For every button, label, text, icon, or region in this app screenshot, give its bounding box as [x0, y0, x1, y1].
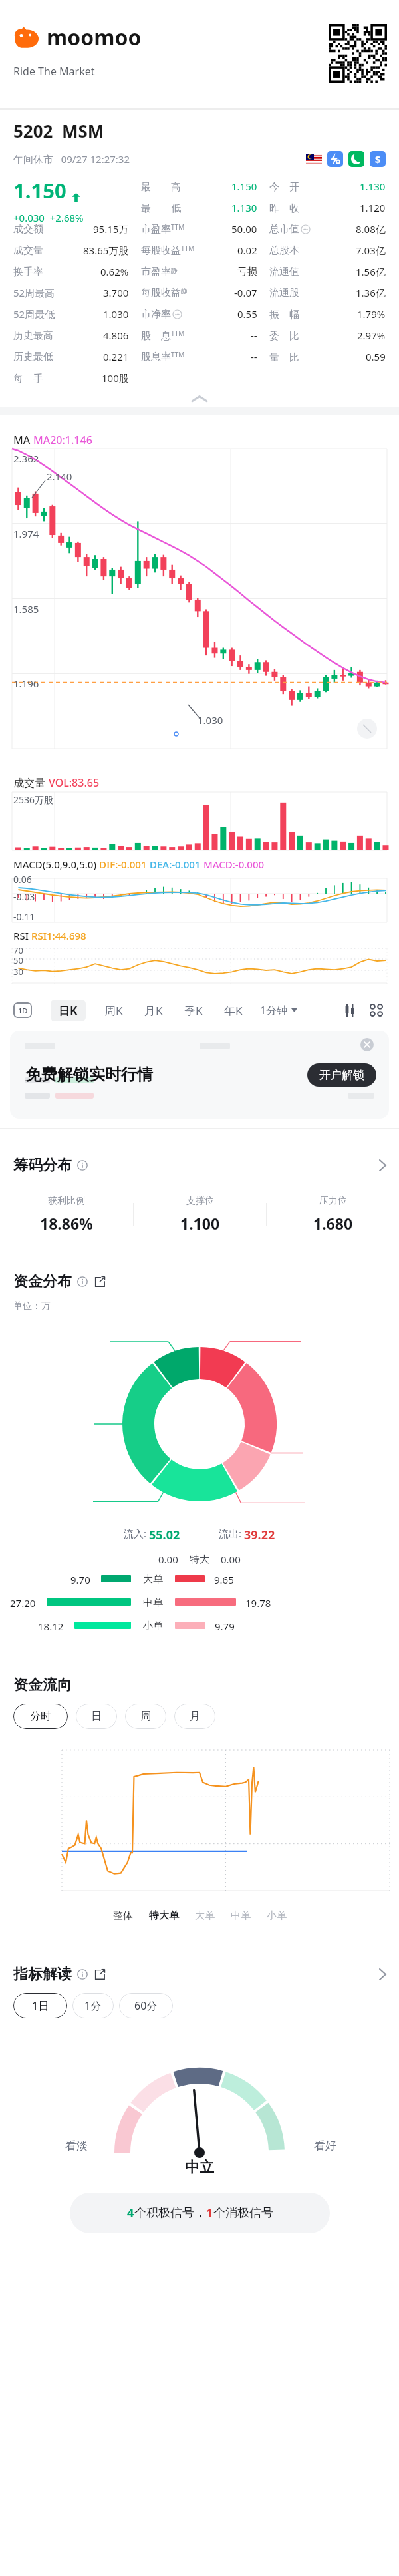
button[interactable]: 周K — [96, 1000, 131, 1021]
staticText: 3.700 — [103, 286, 129, 299]
button[interactable]: 年K — [216, 1000, 251, 1021]
staticText: 1.36亿 — [356, 286, 386, 299]
staticText: 看淡 — [65, 2139, 88, 2153]
staticText: 中单 — [231, 1909, 251, 1922]
button[interactable]: 1分 — [72, 1993, 114, 2018]
button[interactable]: 小单 — [259, 1907, 295, 1925]
staticText: 1.585 — [13, 602, 39, 616]
staticText: 静 — [181, 287, 188, 295]
staticText: 特大 — [190, 1553, 209, 1566]
staticText: 流通股 — [269, 287, 299, 299]
staticText: 2.97% — [357, 329, 386, 342]
staticText: 整体 — [113, 1909, 133, 1922]
staticText: 开户解锁 — [319, 1068, 364, 1082]
button[interactable]: 中单 — [223, 1907, 259, 1925]
staticText: 1.150 — [231, 180, 257, 193]
button[interactable]: 整体 — [105, 1907, 141, 1925]
button[interactable]: 1日 — [13, 1993, 67, 2018]
staticText: 4 — [127, 2205, 134, 2221]
button[interactable]: 季K — [176, 1000, 211, 1021]
staticText: 95.15万 — [93, 222, 129, 236]
staticText: 52周最低 — [13, 307, 55, 321]
staticText: MA — [13, 433, 33, 446]
staticText: 100股 — [102, 371, 129, 385]
staticText: 成交量 — [13, 775, 49, 789]
staticText: 年K — [224, 1003, 243, 1018]
staticText: 1.196 — [13, 677, 39, 690]
staticText: 振 幅 — [269, 307, 299, 321]
staticText: 39.22 — [244, 1527, 275, 1543]
staticText: 看好 — [314, 2139, 336, 2153]
staticText: 1.56亿 — [356, 265, 386, 278]
staticText: -- — [251, 350, 257, 363]
staticText: 大单 — [143, 1573, 163, 1584]
button[interactable]: 月K — [136, 1000, 171, 1021]
staticText: 历史最高 — [13, 329, 53, 342]
staticText: 0.00 — [158, 1553, 178, 1566]
button[interactable]: 免费解锁实时行情 — [10, 1031, 389, 1119]
staticText: 今 开 — [269, 180, 299, 193]
staticText: 0.55 — [237, 307, 257, 321]
staticText: 股息率 — [141, 351, 171, 363]
other: Open — [380, 1969, 386, 1980]
button[interactable]: 资金分布 — [0, 1263, 399, 1300]
staticText: RSI1:44.698 — [31, 929, 86, 942]
staticText: 成交量 — [13, 244, 43, 257]
staticText: 日 — [91, 1710, 102, 1723]
button[interactable]: 周 — [125, 1704, 166, 1729]
button[interactable]: Close — [360, 1037, 374, 1052]
button[interactable]: 日K — [51, 1000, 86, 1021]
staticText: 27.20 — [10, 1596, 36, 1608]
staticText: 83.65万股 — [83, 244, 129, 257]
button[interactable]: 1分钟 — [259, 1003, 299, 1017]
button[interactable]: 特大单 — [141, 1907, 187, 1925]
staticText: 午间休市 09/27 12:27:32 — [13, 152, 130, 166]
staticText: 中立 — [185, 2158, 214, 2177]
staticText: 60分 — [134, 1998, 158, 2013]
button[interactable]: 分时 — [13, 1704, 68, 1729]
staticText: 筹码分布 — [13, 1156, 72, 1175]
staticText: 大单 — [195, 1909, 215, 1922]
button[interactable]: 4 — [70, 2193, 330, 2233]
staticText: 1.030 — [198, 713, 223, 727]
button[interactable]: 月 — [174, 1704, 215, 1729]
button[interactable]: 60分 — [119, 1993, 173, 2018]
button[interactable]: 大单 — [187, 1907, 223, 1925]
staticText: DEA:-0.001 — [150, 858, 203, 871]
staticText: 8.08亿 — [356, 222, 386, 236]
staticText: DIF:-0.001 — [99, 858, 150, 871]
staticText: 52周最高 — [13, 286, 55, 299]
staticText: TTM — [171, 329, 185, 338]
button[interactable]: 指标解读 — [0, 1956, 399, 1993]
staticText: 18.12 — [38, 1620, 64, 1631]
staticText: 换手率 — [13, 266, 43, 278]
staticText: 2.140 — [47, 470, 72, 483]
staticText: 市净率 — [141, 308, 171, 321]
staticText: TTM — [171, 222, 185, 232]
staticText: 1.680 — [313, 1213, 353, 1234]
staticText: TTM — [181, 244, 195, 253]
staticText: 1.130 — [231, 201, 257, 214]
button[interactable]: 筹码分布 — [0, 1147, 399, 1184]
button[interactable]: More — [367, 1001, 386, 1019]
staticText: 9.70 — [70, 1573, 90, 1584]
staticText: 0.221 — [103, 350, 129, 363]
staticText: VOL:83.65 — [49, 775, 100, 789]
staticText: 0.59 — [366, 350, 386, 363]
staticText: 1.79% — [357, 307, 386, 321]
button[interactable]: 开户解锁 — [307, 1063, 376, 1087]
button[interactable]: 资金流向 — [0, 1666, 399, 1704]
staticText: 1.974 — [13, 527, 39, 540]
staticText: 1D — [18, 1006, 28, 1015]
staticText: 19.78 — [245, 1596, 271, 1608]
button[interactable]: Candles — [340, 1001, 359, 1019]
staticText: 最 高 — [141, 180, 181, 193]
staticText: 特大单 — [149, 1909, 179, 1922]
staticText: 每 手 — [13, 371, 43, 385]
staticText: MACD(5.0,9.0,5.0) — [13, 858, 99, 871]
staticText: -- — [251, 329, 257, 342]
button[interactable]: 日 — [76, 1704, 117, 1729]
staticText: 总市值 — [269, 223, 299, 236]
staticText: 1 — [206, 2205, 213, 2221]
button[interactable]: 1D — [13, 1002, 32, 1018]
